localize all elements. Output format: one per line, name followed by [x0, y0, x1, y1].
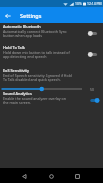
button[interactable]: Back: [0, 7, 16, 23]
staticText: Enable the sound analyzer overlay on: [3, 96, 66, 101]
staticText: Automatically connect Bluetooth Sync: [3, 29, 67, 34]
button[interactable]: Automatic Bluetooth: [0, 23, 103, 42]
button[interactable]: Sound Analytics: [0, 90, 103, 109]
button[interactable]: EoS Sensitivity: [0, 67, 103, 89]
button[interactable]: [87, 94, 101, 106]
staticText: 50: [90, 87, 94, 92]
staticText: Hold To Talk: [3, 45, 25, 50]
button[interactable]: Recents: [70, 169, 84, 183]
staticText: To Talk disabled and quick speech.: [3, 77, 61, 82]
staticText: 10%: [75, 1, 82, 6]
staticText: the main screen.: [3, 100, 32, 105]
button[interactable]: [87, 27, 101, 39]
staticText: End of Speech sensitivity. Ignored if Ho…: [3, 73, 72, 78]
staticText: 12:14 PM: [87, 1, 102, 6]
button[interactable]: Back: [17, 169, 31, 183]
staticText: app detecting end speech: [3, 54, 47, 59]
staticText: EoS Sensitivity: [3, 68, 29, 73]
button[interactable]: Hold To Talk: [0, 44, 103, 63]
staticText: button when app loads: [3, 33, 43, 38]
button[interactable]: Home: [44, 169, 58, 183]
button[interactable]: [87, 48, 101, 60]
staticText: Sound Analytics: [3, 91, 32, 96]
staticText: Settings: [20, 12, 42, 19]
staticText: Automatic Bluetooth: [3, 24, 41, 29]
staticText: Hold down mic button to talk instead of: [3, 50, 70, 55]
